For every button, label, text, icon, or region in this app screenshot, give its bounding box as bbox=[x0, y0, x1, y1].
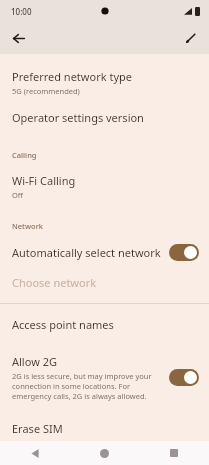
staticText: Erase SIM bbox=[12, 421, 63, 434]
staticText: Calling bbox=[12, 150, 37, 160]
button[interactable]: Toggle bbox=[169, 369, 199, 386]
button[interactable]: Automatically select network bbox=[0, 237, 209, 268]
button[interactable]: Recent apps bbox=[164, 443, 184, 463]
staticText: Preferred network type bbox=[12, 69, 132, 84]
button[interactable]: Allow 2G bbox=[0, 347, 209, 408]
button[interactable]: Erase SIM bbox=[0, 414, 209, 441]
staticText: Wi-Fi Calling bbox=[12, 173, 76, 188]
button[interactable]: Access point names bbox=[0, 310, 209, 339]
staticText: 2G is less secure, but may improve your … bbox=[12, 371, 161, 401]
staticText: Automatically select network bbox=[12, 245, 161, 260]
button[interactable]: Preferred network type bbox=[0, 62, 209, 103]
button[interactable]: Wi-Fi Calling bbox=[0, 166, 209, 207]
button: Choose network bbox=[0, 268, 209, 297]
staticText: Choose network bbox=[12, 275, 97, 290]
button[interactable]: Edit bbox=[179, 26, 203, 50]
staticText: Operator settings version bbox=[12, 110, 144, 125]
button[interactable]: Operator settings version bbox=[0, 103, 209, 132]
staticText: 10:00 bbox=[11, 6, 32, 17]
staticText: 5G (recommended) bbox=[12, 86, 80, 96]
button[interactable]: Back bbox=[6, 26, 30, 50]
staticText: Allow 2G bbox=[12, 354, 57, 369]
staticText: Access point names bbox=[12, 317, 114, 332]
staticText: Network bbox=[12, 221, 43, 231]
staticText: Off bbox=[12, 190, 24, 200]
button[interactable]: Home bbox=[94, 443, 114, 463]
button[interactable]: Back bbox=[25, 443, 45, 463]
button[interactable]: Toggle bbox=[169, 244, 199, 261]
